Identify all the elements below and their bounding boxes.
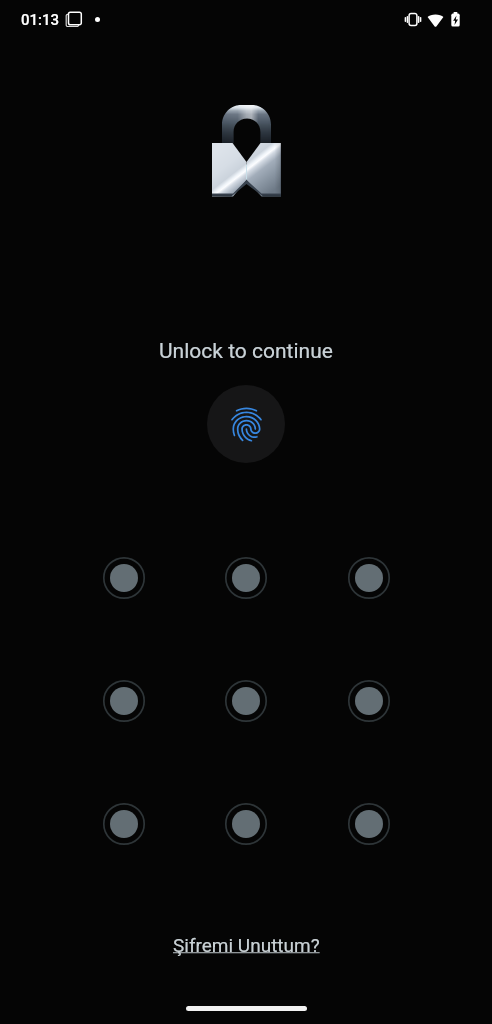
- button[interactable]: Unlock with fingerprint: [207, 385, 285, 463]
- button[interactable]: Pattern dot: [222, 554, 270, 602]
- button[interactable]: Pattern dot: [222, 677, 270, 725]
- button[interactable]: Pattern dot: [100, 800, 148, 848]
- button[interactable]: Pattern dot: [345, 554, 393, 602]
- button[interactable]: Pattern dot: [100, 677, 148, 725]
- button[interactable]: Pattern dot: [222, 800, 270, 848]
- staticText: 01:13: [21, 11, 60, 29]
- staticText: Unlock to continue: [159, 339, 333, 364]
- button[interactable]: Pattern dot: [345, 677, 393, 725]
- button[interactable]: Pattern dot: [100, 554, 148, 602]
- button[interactable]: Pattern dot: [345, 800, 393, 848]
- button[interactable]: Şifremi Unuttum?: [155, 920, 338, 970]
- staticText: Şifremi Unuttum?: [173, 934, 320, 956]
